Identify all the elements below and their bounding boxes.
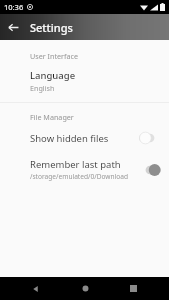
button[interactable]: Remember last path bbox=[0, 151, 169, 187]
staticText: User Interface bbox=[30, 51, 79, 61]
button[interactable]: Show hidden files bbox=[0, 124, 169, 151]
staticText: 10:36 bbox=[4, 2, 24, 12]
button[interactable]: On bbox=[139, 163, 161, 177]
button[interactable]: Language bbox=[0, 63, 169, 98]
button[interactable]: Home bbox=[73, 277, 97, 300]
staticText: Show hidden files bbox=[30, 132, 109, 145]
staticText: /storage/emulated/0/Download bbox=[30, 172, 129, 181]
button[interactable]: Off bbox=[139, 131, 161, 145]
staticText: Remember last path bbox=[30, 158, 121, 171]
staticText: Language bbox=[30, 69, 76, 82]
staticText: English bbox=[30, 83, 55, 93]
staticText: Settings bbox=[30, 20, 73, 35]
button[interactable]: Recent apps bbox=[121, 277, 145, 300]
button[interactable]: Back bbox=[3, 17, 23, 37]
staticText: File Manager bbox=[30, 112, 74, 122]
button[interactable]: Back bbox=[24, 277, 48, 300]
